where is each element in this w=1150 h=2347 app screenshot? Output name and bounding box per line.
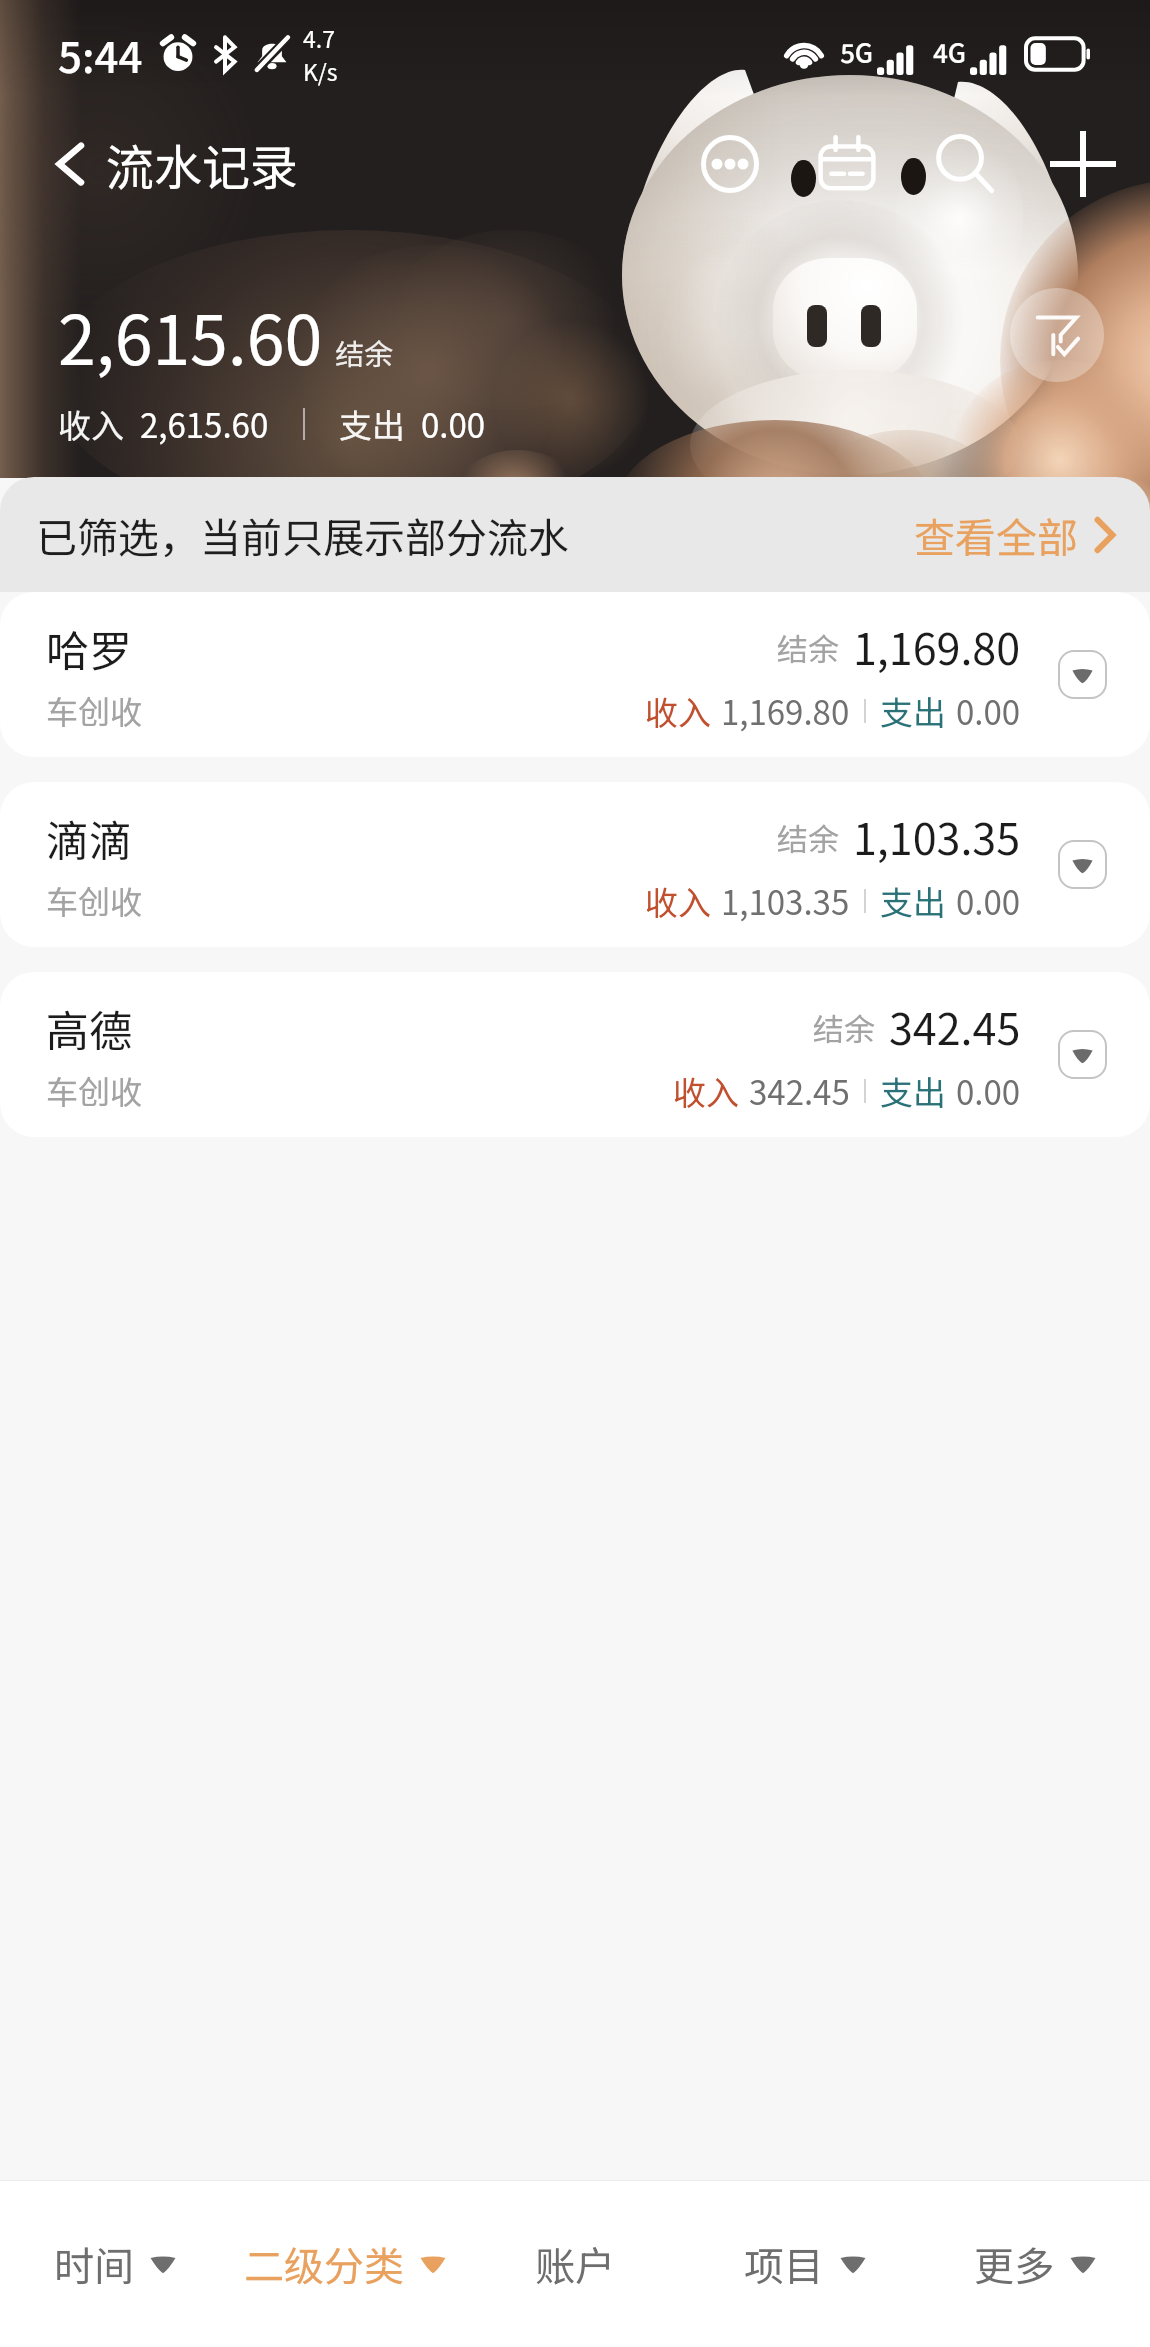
staticText: 支出 — [880, 1067, 946, 1115]
button[interactable]: 项目 — [690, 2181, 920, 2347]
button[interactable]: Calendar — [807, 124, 887, 204]
button[interactable]: 已筛选，当前只展示部分流水 — [0, 477, 1150, 592]
staticText: 结余 — [777, 625, 839, 670]
staticText: 结余 — [813, 1005, 875, 1050]
staticText: 已筛选，当前只展示部分流水 — [36, 505, 569, 564]
staticText: 0.00 — [956, 687, 1021, 735]
staticText: 收入 — [58, 400, 124, 448]
staticText: 车创收 — [46, 1067, 143, 1113]
staticText: 滴滴 — [46, 807, 132, 869]
staticText: 5G — [840, 33, 874, 71]
staticText: 更多 — [974, 2235, 1054, 2293]
staticText: 收入 — [645, 687, 711, 735]
staticText: 2,615.60 — [58, 286, 323, 384]
button[interactable]: 滴滴 — [0, 782, 1150, 947]
button[interactable]: 高德 — [0, 972, 1150, 1137]
staticText: 支出 — [339, 400, 405, 448]
button[interactable]: Search — [925, 124, 1005, 204]
button[interactable]: 二级分类 — [230, 2181, 460, 2347]
staticText: 1,169.80 — [721, 687, 850, 735]
staticText: 0.00 — [421, 400, 486, 448]
staticText: 结余 — [777, 815, 839, 860]
staticText: 哈罗 — [46, 617, 132, 679]
staticText: 车创收 — [46, 687, 143, 733]
staticText: K/s — [303, 54, 338, 87]
staticText: 4G — [933, 33, 967, 71]
staticText: 2,615.60 — [140, 400, 269, 448]
button[interactable]: More options — [690, 124, 770, 204]
button[interactable]: Back — [36, 130, 104, 198]
staticText: 0.00 — [956, 877, 1021, 925]
staticText: 1,169.80 — [853, 615, 1021, 677]
staticText: 账户 — [535, 2235, 615, 2293]
staticText: 结余 — [335, 331, 394, 373]
button[interactable]: 更多 — [920, 2181, 1150, 2347]
staticText: 1,103.35 — [721, 877, 850, 925]
staticText: 1,103.35 — [853, 805, 1021, 867]
staticText: 高德 — [46, 997, 132, 1059]
button[interactable]: Expand — [1059, 651, 1106, 698]
staticText: 车创收 — [46, 877, 143, 923]
button[interactable]: Expand — [1059, 841, 1106, 888]
button[interactable]: Filter — [1010, 288, 1104, 382]
staticText: 查看全部 — [914, 505, 1078, 564]
staticText: 项目 — [744, 2235, 824, 2293]
staticText: 5:44 — [58, 24, 143, 85]
button[interactable]: Expand — [1059, 1031, 1106, 1078]
staticText: 流水记录 — [106, 129, 299, 199]
button[interactable]: 时间 — [0, 2181, 230, 2347]
button[interactable]: Add — [1043, 124, 1123, 204]
staticText: 时间 — [54, 2235, 134, 2293]
staticText: 支出 — [880, 877, 946, 925]
staticText: 0.00 — [956, 1067, 1021, 1115]
staticText: 二级分类 — [244, 2235, 404, 2293]
staticText: 收入 — [645, 877, 711, 925]
staticText: 4.7 — [303, 21, 335, 54]
button[interactable]: 哈罗 — [0, 592, 1150, 757]
staticText: 342.45 — [749, 1067, 850, 1115]
staticText: 342.45 — [889, 995, 1021, 1057]
staticText: 收入 — [673, 1067, 739, 1115]
button[interactable]: 账户 — [460, 2181, 690, 2347]
staticText: 支出 — [880, 687, 946, 735]
